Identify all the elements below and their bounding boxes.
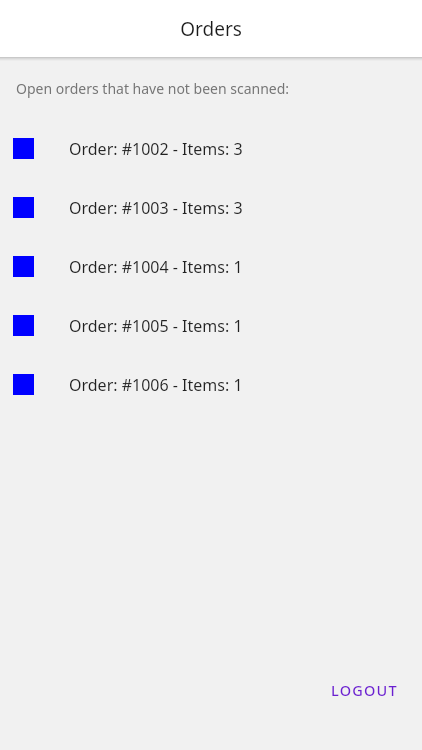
button[interactable]: LOGOUT [323, 674, 406, 706]
button[interactable]: Scan order 1002 [0, 119, 422, 178]
staticText: Order: #1006 - Items: 1 [69, 374, 243, 396]
staticText: LOGOUT [331, 680, 398, 700]
staticText: Orders [180, 16, 242, 42]
button[interactable]: Scan order 1005 [0, 296, 422, 355]
staticText: Order: #1005 - Items: 1 [69, 315, 243, 337]
staticText: Order: #1003 - Items: 3 [69, 197, 243, 219]
staticText: Order: #1002 - Items: 3 [69, 138, 243, 160]
button[interactable]: Scan order 1006 [0, 355, 422, 414]
staticText: Order: #1004 - Items: 1 [69, 256, 243, 278]
staticText: Open orders that have not been scanned: [16, 79, 290, 98]
button[interactable]: Scan order 1004 [0, 237, 422, 296]
button[interactable]: Scan order 1003 [0, 178, 422, 237]
